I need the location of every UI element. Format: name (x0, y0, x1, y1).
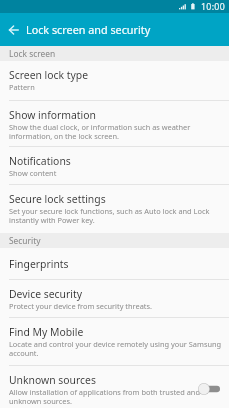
staticText: Lock screen (9, 48, 56, 59)
button[interactable]: Unknown sources (0, 366, 229, 408)
button[interactable]: Device security (0, 280, 229, 318)
button[interactable]: Back (0, 13, 26, 46)
staticText: Notifications (9, 154, 71, 168)
staticText: Show content (9, 168, 57, 178)
button[interactable]: Secure lock settings (0, 185, 229, 233)
staticText: Screen lock type (9, 68, 89, 82)
staticText: Locate and control your device remotely … (9, 339, 222, 358)
staticText: Allow installation of applications from … (9, 387, 200, 406)
staticText: Device security (9, 287, 83, 301)
button[interactable]: Screen lock type (0, 61, 229, 101)
staticText: Security (9, 235, 41, 246)
staticText: Find My Mobile (9, 325, 84, 339)
button[interactable]: Show information (0, 101, 229, 147)
staticText: Show the dual clock, or information such… (9, 122, 191, 141)
staticText: Unknown sources (9, 373, 96, 387)
staticText: Fingerprints (9, 257, 69, 271)
staticText: Secure lock settings (9, 192, 106, 206)
button[interactable]: Fingerprints (0, 248, 229, 280)
staticText: Pattern (9, 82, 35, 92)
staticText: 10:00 (201, 1, 225, 13)
button[interactable]: Notifications (0, 147, 229, 185)
staticText: Protect your device from security threat… (9, 301, 153, 311)
staticText: Set your secure lock functions, such as … (9, 206, 210, 225)
button[interactable]: Find My Mobile (0, 318, 229, 366)
staticText: Lock screen and security (26, 22, 151, 37)
staticText: Show information (9, 108, 97, 122)
